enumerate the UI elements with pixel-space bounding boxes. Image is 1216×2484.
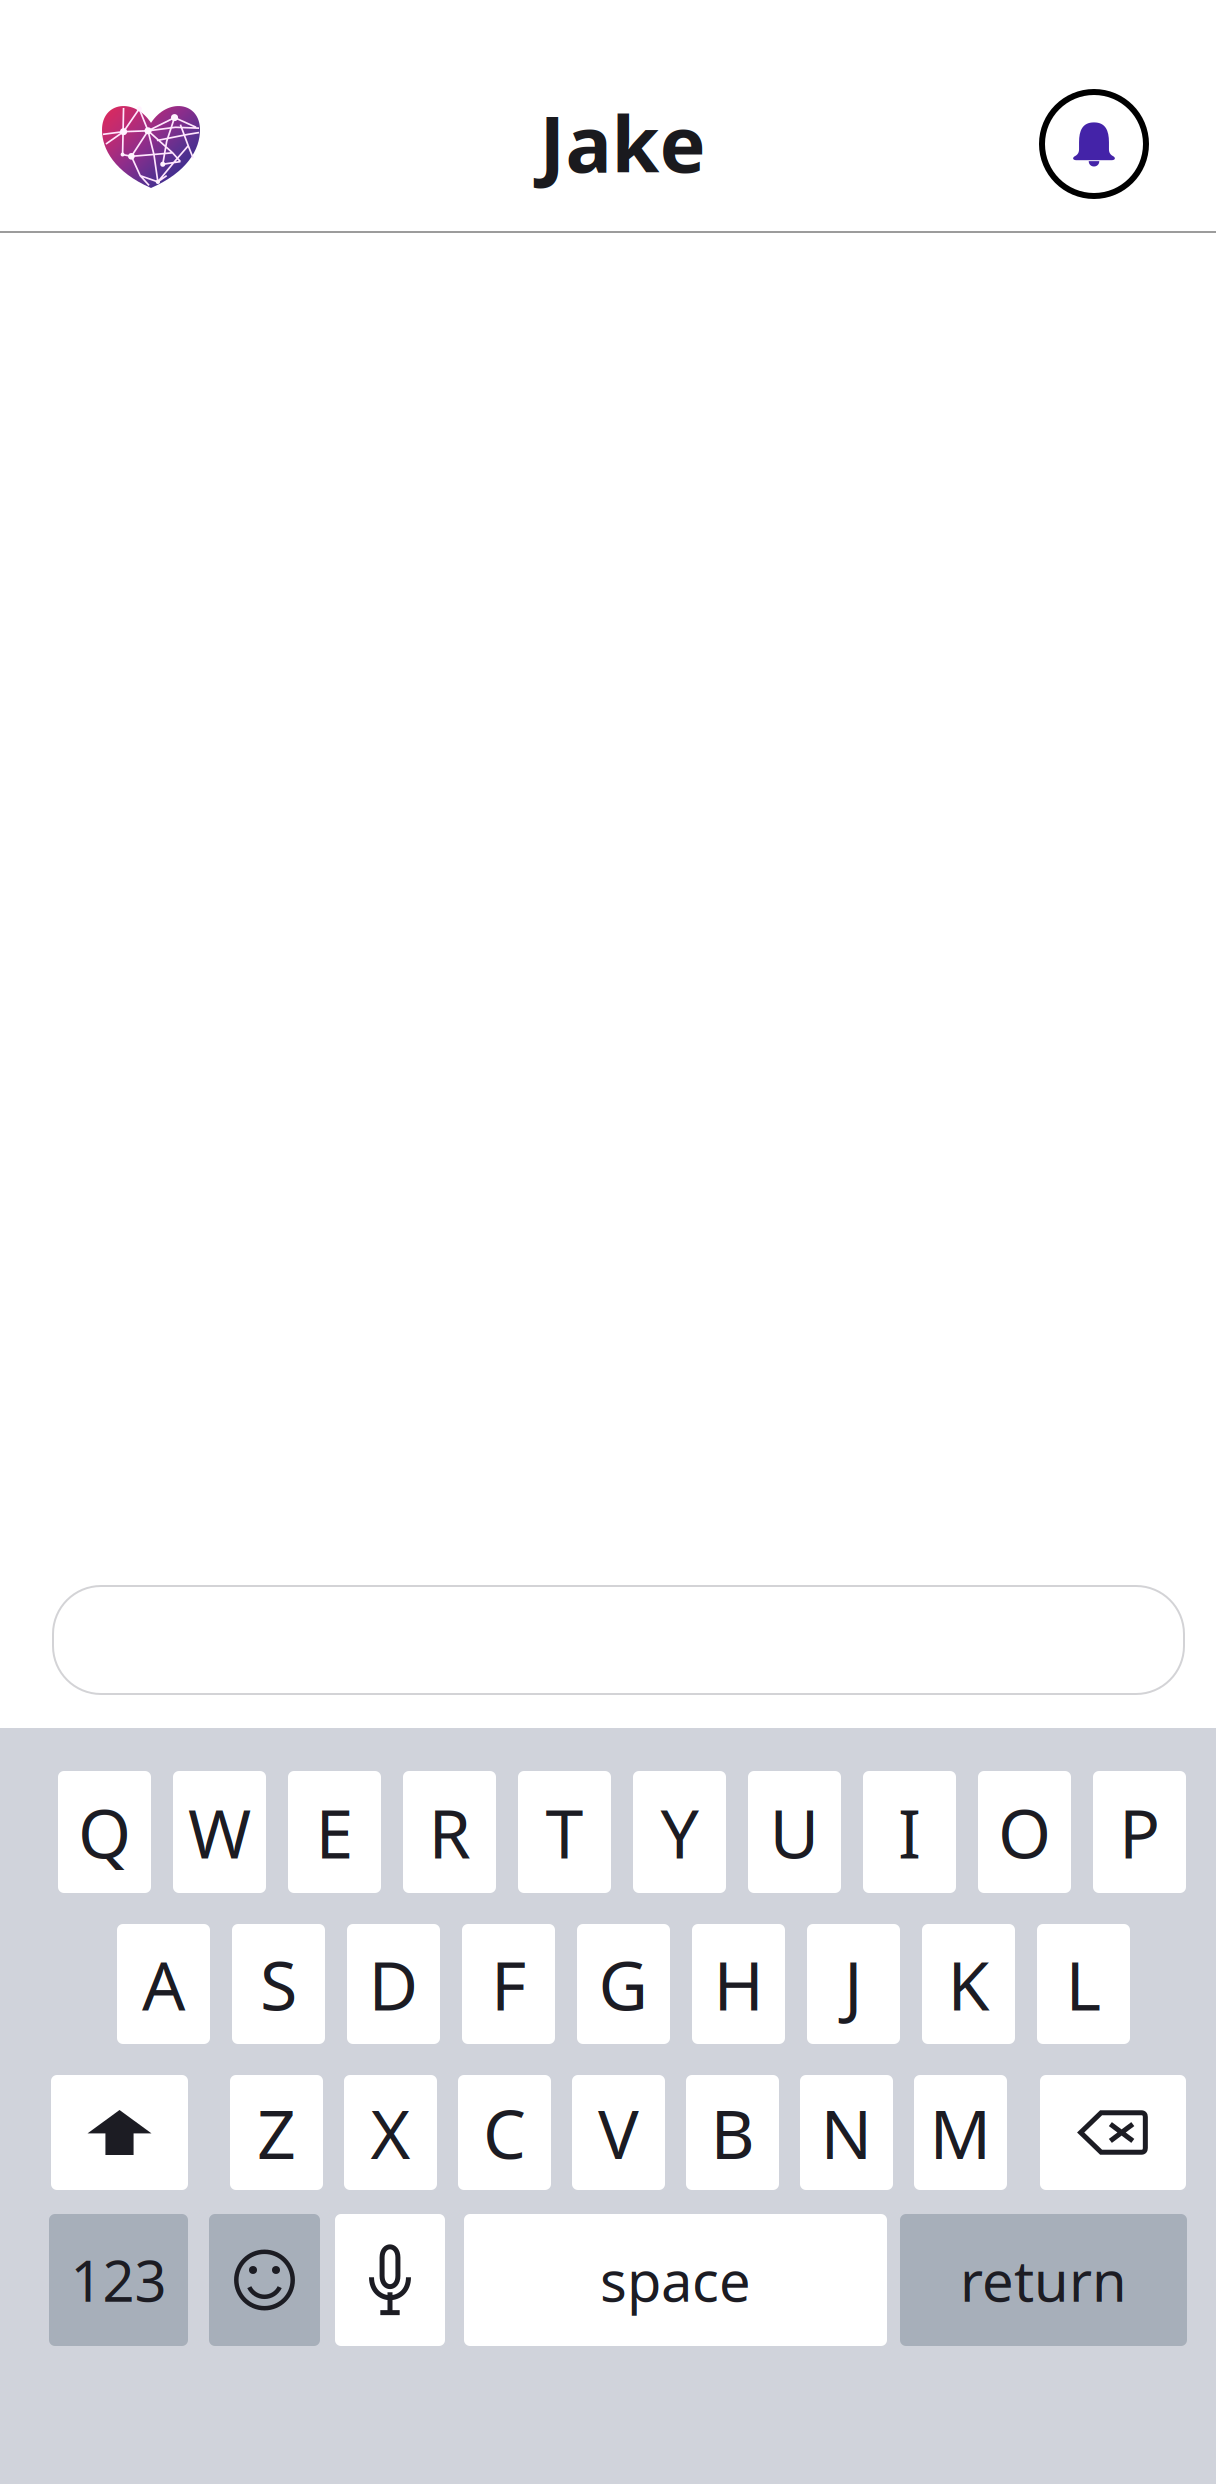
button[interactable]: K xyxy=(922,1924,1015,2044)
staticText: Jake xyxy=(539,91,705,194)
button[interactable]: T xyxy=(518,1771,611,1893)
button[interactable]: R xyxy=(403,1771,496,1893)
staticText: O xyxy=(998,1787,1051,1877)
staticText: space xyxy=(600,2243,751,2317)
button[interactable]: S xyxy=(232,1924,325,2044)
staticText: J xyxy=(844,1939,863,2029)
button[interactable]: Home xyxy=(102,100,200,188)
staticText: H xyxy=(713,1939,763,2029)
button[interactable]: return xyxy=(900,2214,1187,2346)
staticText: W xyxy=(188,1787,251,1877)
staticText: I xyxy=(898,1787,921,1877)
button[interactable]: F xyxy=(462,1924,555,2044)
button[interactable]: Z xyxy=(230,2075,323,2190)
staticText: X xyxy=(370,2087,410,2178)
staticText: K xyxy=(947,1939,989,2029)
button[interactable]: A xyxy=(117,1924,210,2044)
button[interactable]: V xyxy=(572,2075,665,2190)
staticText: V xyxy=(598,2087,639,2178)
button[interactable]: U xyxy=(748,1771,841,1893)
staticText: G xyxy=(598,1939,648,2029)
button[interactable]: D xyxy=(347,1924,440,2044)
button[interactable]: Delete xyxy=(1040,2075,1186,2190)
staticText: T xyxy=(545,1787,583,1877)
staticText: return xyxy=(960,2243,1127,2317)
button[interactable]: Dictation xyxy=(335,2214,445,2346)
button[interactable]: N xyxy=(800,2075,893,2190)
button[interactable]: M xyxy=(914,2075,1007,2190)
button[interactable]: G xyxy=(577,1924,670,2044)
staticText: P xyxy=(1119,1787,1160,1877)
staticText: L xyxy=(1065,1939,1101,2029)
staticText: A xyxy=(142,1939,185,2029)
staticText: Z xyxy=(257,2087,296,2178)
staticText: F xyxy=(491,1939,526,2029)
button[interactable]: Q xyxy=(58,1771,151,1893)
staticText: D xyxy=(368,1939,418,2029)
button[interactable]: P xyxy=(1093,1771,1186,1893)
button[interactable]: 123 xyxy=(49,2214,188,2346)
staticText: Y xyxy=(660,1787,698,1877)
staticText: C xyxy=(483,2087,526,2178)
button[interactable]: Emoji xyxy=(209,2214,320,2346)
button[interactable]: H xyxy=(692,1924,785,2044)
staticText: E xyxy=(315,1787,353,1877)
button[interactable]: X xyxy=(344,2075,437,2190)
button[interactable]: Y xyxy=(633,1771,726,1893)
staticText: M xyxy=(929,2087,991,2178)
button[interactable]: C xyxy=(458,2075,551,2190)
button[interactable]: Notifications xyxy=(1039,89,1149,199)
staticText: S xyxy=(260,1939,297,2029)
button[interactable]: E xyxy=(288,1771,381,1893)
button[interactable]: Shift xyxy=(51,2075,188,2190)
staticText: R xyxy=(428,1787,470,1877)
button[interactable]: L xyxy=(1037,1924,1130,2044)
staticText: B xyxy=(710,2087,754,2178)
staticText: N xyxy=(820,2087,872,2178)
staticText: U xyxy=(769,1787,819,1877)
button[interactable]: space xyxy=(464,2214,887,2346)
button[interactable]: Message xyxy=(53,1586,1184,1694)
staticText: 123 xyxy=(70,2243,166,2317)
button[interactable]: W xyxy=(173,1771,266,1893)
button[interactable]: O xyxy=(978,1771,1071,1893)
button[interactable]: B xyxy=(686,2075,779,2190)
button[interactable]: J xyxy=(807,1924,900,2044)
button[interactable]: I xyxy=(863,1771,956,1893)
staticText: Q xyxy=(78,1787,131,1877)
